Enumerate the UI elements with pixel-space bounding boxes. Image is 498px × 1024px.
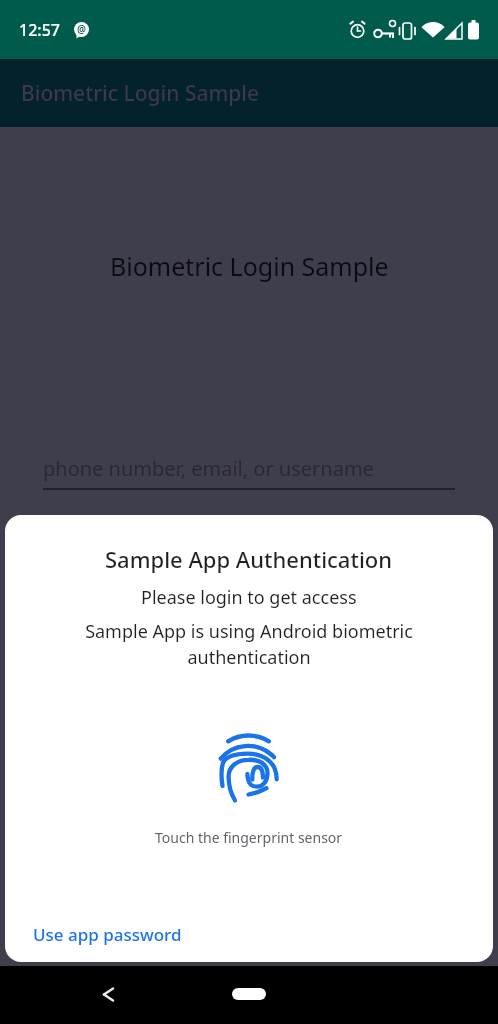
staticText: phone number, email, or username	[43, 455, 374, 482]
staticText: Use app password	[33, 923, 182, 946]
button[interactable]: Use app password	[23, 915, 192, 954]
staticText: Please login to get access	[141, 585, 357, 610]
button[interactable]: phone number, email, or username	[43, 455, 455, 490]
staticText: Sample App is using Android biometric au…	[69, 619, 429, 670]
staticText: Biometric Login Sample	[21, 79, 260, 108]
staticText: Touch the fingerprint sensor	[155, 828, 343, 847]
button[interactable]	[232, 988, 266, 1000]
button[interactable]	[88, 977, 124, 1013]
staticText: Biometric Login Sample	[110, 249, 389, 283]
staticText: @	[77, 22, 86, 36]
staticText: Sample App Authentication	[105, 544, 393, 574]
staticText: 12:57	[19, 19, 60, 41]
